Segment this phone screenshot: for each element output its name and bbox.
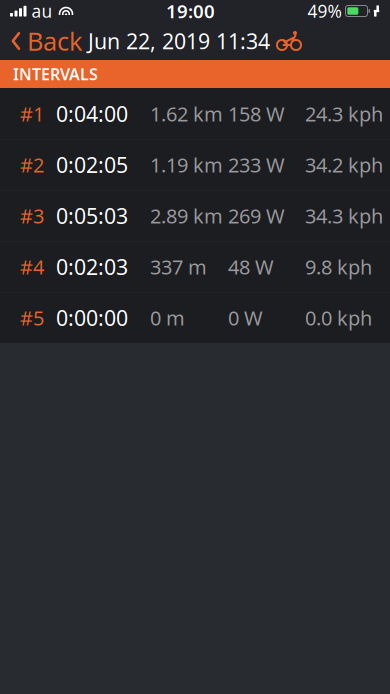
staticText: 1.62 km (150, 100, 223, 127)
staticText: 24.3 kph (305, 100, 383, 127)
staticText: INTERVALS (13, 63, 98, 85)
staticText: 34.3 kph (305, 202, 383, 229)
staticText: 269 W (228, 202, 285, 229)
staticText: #3 (20, 202, 44, 229)
staticText: 0:02:03 (56, 253, 128, 281)
staticText: 233 W (228, 151, 285, 178)
staticText: Back (27, 24, 83, 58)
staticText: 0 W (228, 304, 263, 331)
staticText: #2 (20, 151, 44, 178)
staticText: 0:00:00 (56, 304, 128, 332)
staticText: 19:00 (166, 0, 215, 23)
staticText: 0:02:05 (56, 151, 128, 179)
staticText: 0 m (150, 304, 185, 331)
staticText: 0:05:03 (56, 202, 128, 230)
staticText: #1 (20, 100, 44, 127)
staticText: 48 W (228, 253, 274, 280)
staticText: 9.8 kph (305, 253, 372, 280)
button[interactable]: #5 (0, 292, 390, 343)
staticText: 0:04:00 (56, 100, 128, 128)
staticText: au (31, 0, 52, 22)
button[interactable]: #1 (0, 88, 390, 139)
staticText: #4 (20, 253, 44, 280)
button[interactable]: #4 (0, 241, 390, 292)
staticText: 2.89 km (150, 202, 223, 229)
staticText: 1.19 km (150, 151, 223, 178)
staticText: 158 W (228, 100, 285, 127)
staticText: 0.0 kph (305, 304, 372, 331)
staticText: 337 m (150, 253, 207, 280)
staticText: #5 (20, 304, 44, 331)
button[interactable]: #2 (0, 139, 390, 190)
button[interactable]: #3 (0, 190, 390, 241)
staticText: Jun 22, 2019 11:34 (88, 27, 270, 55)
staticText: 34.2 kph (305, 151, 383, 178)
button[interactable]: Back (0, 18, 93, 64)
staticText: 49% (307, 0, 341, 22)
